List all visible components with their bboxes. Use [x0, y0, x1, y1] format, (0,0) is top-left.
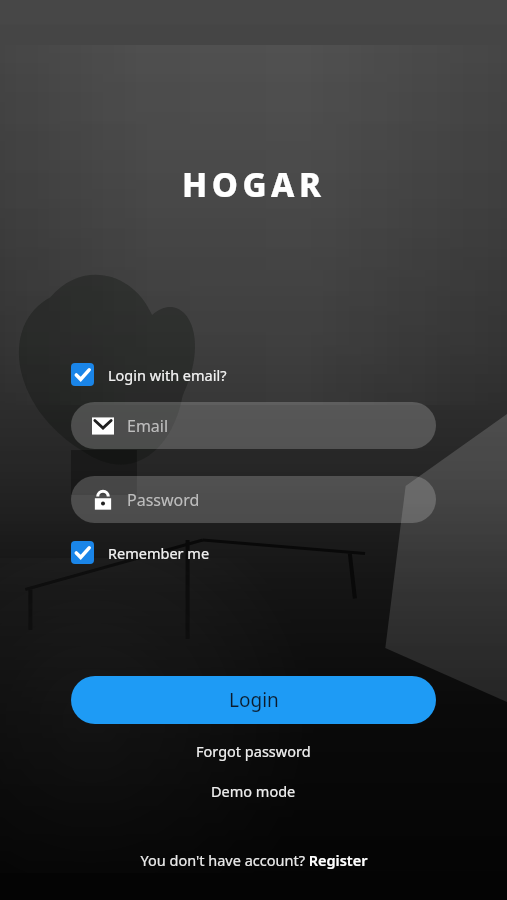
button[interactable]: Remember me	[71, 537, 436, 568]
button[interactable]: You don't have account? Register	[128, 846, 380, 874]
button[interactable]: Login	[71, 676, 436, 724]
button[interactable]: Forgot password	[182, 738, 325, 764]
staticText: HOGAR	[182, 162, 326, 207]
button[interactable]: Login with email?	[71, 359, 436, 390]
staticText: Forgot password	[196, 741, 311, 761]
button[interactable]: Password	[71, 476, 436, 523]
staticText: Login with email?	[108, 365, 227, 385]
staticText: Login	[229, 687, 279, 713]
staticText: Demo mode	[211, 781, 296, 801]
button[interactable]: Demo mode	[197, 778, 310, 804]
staticText: Remember me	[108, 543, 210, 563]
staticText: Password	[127, 489, 200, 511]
button[interactable]: Email	[71, 402, 436, 449]
staticText: Email	[127, 415, 169, 437]
staticText: You don't have account? Register	[140, 850, 368, 870]
